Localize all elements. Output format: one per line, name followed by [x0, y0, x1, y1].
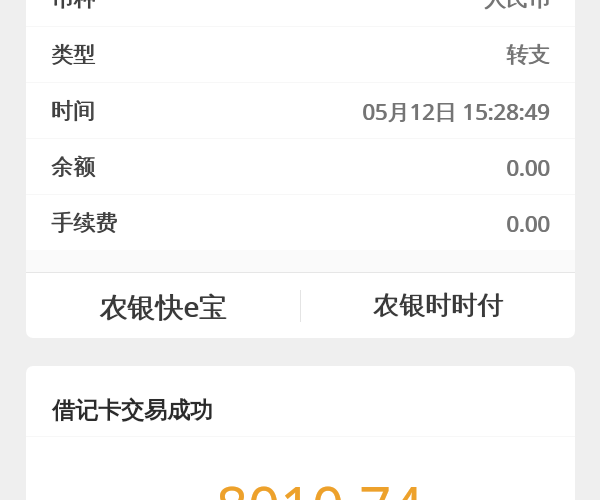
staticText: 币种 — [52, 0, 96, 13]
staticText: 0.00 — [507, 152, 551, 182]
staticText: 8010.74 — [216, 468, 424, 500]
staticText: 0.00 — [506, 152, 550, 182]
staticText: 借记卡交易成功 — [52, 396, 213, 425]
button[interactable]: 借记卡交易成功 — [26, 366, 575, 436]
staticText: 0.00 — [507, 208, 551, 238]
staticText: 余额 — [52, 153, 96, 181]
staticText: 农银快e宝 — [100, 287, 228, 325]
staticText: 转支 — [507, 41, 551, 69]
staticText: 币种 — [51, 0, 95, 13]
staticText: 手续费 — [51, 209, 117, 237]
staticText: 人民币 — [485, 0, 551, 13]
staticText: 类型 — [52, 41, 96, 69]
staticText: 人民币 — [484, 0, 550, 13]
staticText: 时间 — [51, 97, 95, 125]
staticText: 05月12日 15:28:49 — [363, 96, 551, 126]
staticText: 手续费 — [52, 209, 118, 237]
staticText: 农银快e宝 — [99, 287, 227, 325]
staticText: 余额 — [51, 153, 95, 181]
staticText: 类型 — [51, 41, 95, 69]
staticText: 05月12日 15:28:49 — [362, 96, 550, 126]
staticText: 转支 — [506, 41, 550, 69]
staticText: 时间 — [52, 97, 96, 125]
staticText: 农银时时付 — [373, 289, 503, 322]
button[interactable]: 农银快e宝 — [26, 273, 300, 338]
staticText: 0.00 — [506, 208, 550, 238]
staticText: 农银时时付 — [374, 289, 504, 322]
button[interactable]: 农银时时付 — [301, 273, 575, 338]
